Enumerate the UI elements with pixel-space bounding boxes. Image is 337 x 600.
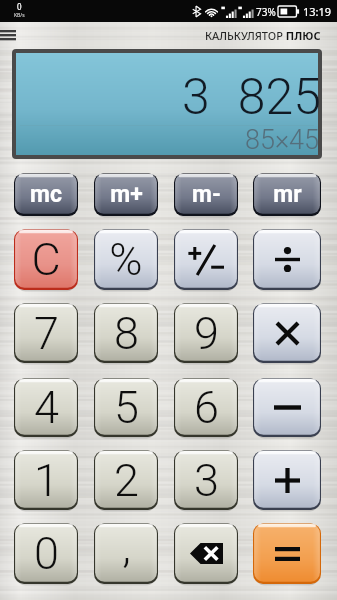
button[interactable]: 3 [174,450,238,510]
button[interactable]: 8 [94,303,158,363]
button[interactable] [253,378,321,437]
staticText: 3 [194,454,219,507]
button[interactable] [253,229,321,290]
button[interactable]: mr [253,173,321,216]
staticText: m- [192,181,221,208]
button[interactable] [174,523,238,584]
button[interactable]: 0 [14,523,78,584]
button[interactable]: 9 [174,303,238,363]
button[interactable]: , [94,523,158,584]
staticText: , [122,520,131,573]
button[interactable] [174,229,238,290]
staticText: 3 825 [182,68,322,127]
button[interactable] [253,450,321,510]
button[interactable]: 6 [174,378,238,437]
staticText: 73% [256,5,276,19]
button[interactable]: % [94,229,158,290]
staticText: 85×45 [245,124,320,156]
button[interactable]: 1 [14,450,78,510]
staticText: ПЛЮС [283,28,321,43]
staticText: KB/s [14,12,25,19]
staticText: 8 [114,307,139,360]
staticText: КАЛЬКУЛЯТОР [205,28,283,43]
staticText: 6 [194,381,219,434]
staticText: 0 [34,527,59,580]
staticText: 2 [114,454,139,507]
staticText: mc [30,181,62,208]
staticText: mr [273,181,302,208]
staticText: 9 [194,307,219,360]
staticText: 4 [34,381,59,434]
button[interactable]: 7 [14,303,78,363]
staticText: C [31,233,61,286]
staticText: 7 [34,307,59,360]
button[interactable]: 4 [14,378,78,437]
staticText: % [109,233,143,286]
button[interactable]: mc [14,173,78,216]
button[interactable] [253,303,321,363]
button[interactable]: Menu [0,25,24,47]
staticText: m+ [110,181,143,208]
button[interactable]: C [14,229,78,290]
button[interactable] [253,523,321,584]
staticText: 0 [17,1,22,12]
button[interactable]: 5 [94,378,158,437]
staticText: 5 [114,381,139,434]
button[interactable]: 2 [94,450,158,510]
staticText: 1 [34,454,59,507]
staticText: 13:19 [303,4,332,19]
button[interactable]: m+ [94,173,158,216]
button[interactable]: m- [174,173,238,216]
